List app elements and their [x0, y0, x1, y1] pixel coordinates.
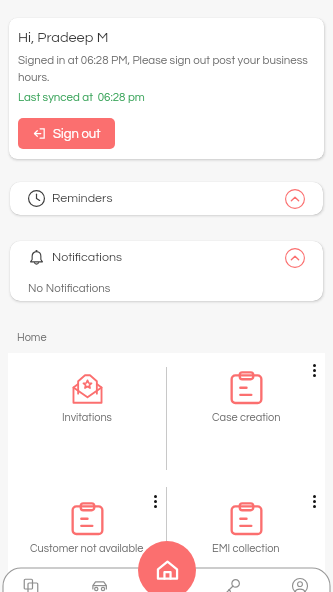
staticText: Hi, Pradeep M	[18, 30, 109, 45]
button[interactable]: Notifications	[10, 241, 323, 301]
button[interactable]: Home	[138, 541, 196, 592]
button[interactable]: Customer not available	[8, 484, 166, 592]
button[interactable]: Invitations	[8, 353, 166, 484]
button[interactable]: Sign out	[18, 118, 115, 149]
button[interactable]: EMI collection	[167, 484, 325, 592]
staticText: Case creation	[212, 412, 281, 423]
staticText: No Notifications	[28, 283, 111, 295]
staticText: EMI collection	[212, 543, 280, 554]
staticText: Last synced at 06:28 pm	[18, 92, 145, 104]
button[interactable]: Hi, Pradeep M	[9, 18, 324, 159]
button[interactable]: Reminders	[10, 182, 323, 215]
staticText: Reminders	[52, 192, 113, 205]
staticText: Signed in at 06:28 PM, Please sign out p…	[18, 55, 318, 83]
button[interactable]: Vehicle	[87, 577, 113, 592]
button[interactable]: Search	[220, 577, 246, 592]
button[interactable]: Profile	[287, 577, 313, 592]
button[interactable]: Case creation	[167, 353, 325, 484]
staticText: Sign out	[53, 127, 101, 140]
staticText: Customer not available	[30, 543, 144, 554]
staticText: Notifications	[52, 251, 123, 264]
button[interactable]: Documents	[18, 577, 44, 592]
staticText: Home	[17, 332, 47, 343]
staticText: Invitations	[62, 412, 112, 423]
